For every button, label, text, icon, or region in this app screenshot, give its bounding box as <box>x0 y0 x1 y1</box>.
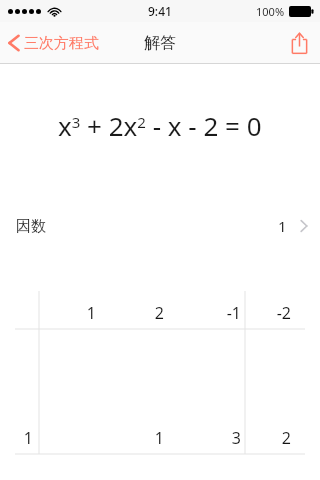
staticText: 1 <box>154 427 164 449</box>
button[interactable]: 三次方程式 <box>0 22 107 64</box>
staticText: 三次方程式 <box>24 34 99 53</box>
button[interactable]: Share <box>279 22 320 64</box>
staticText: 1 <box>278 216 287 236</box>
staticText: -2 <box>276 302 291 324</box>
staticText: 因数 <box>16 217 46 236</box>
staticText: 2 <box>281 427 291 449</box>
button[interactable]: 因数 <box>0 204 320 248</box>
staticText: 1 <box>86 302 96 324</box>
staticText: 解答 <box>144 33 176 53</box>
staticText: 1 <box>23 427 33 449</box>
staticText: 100% <box>256 4 285 19</box>
staticText: 3 <box>231 427 241 449</box>
staticText: 9:41 <box>148 3 172 19</box>
staticText: x3 + 2x2 - x - 2 = 0 <box>58 108 262 143</box>
staticText: -1 <box>226 302 241 324</box>
staticText: 2 <box>154 302 164 324</box>
